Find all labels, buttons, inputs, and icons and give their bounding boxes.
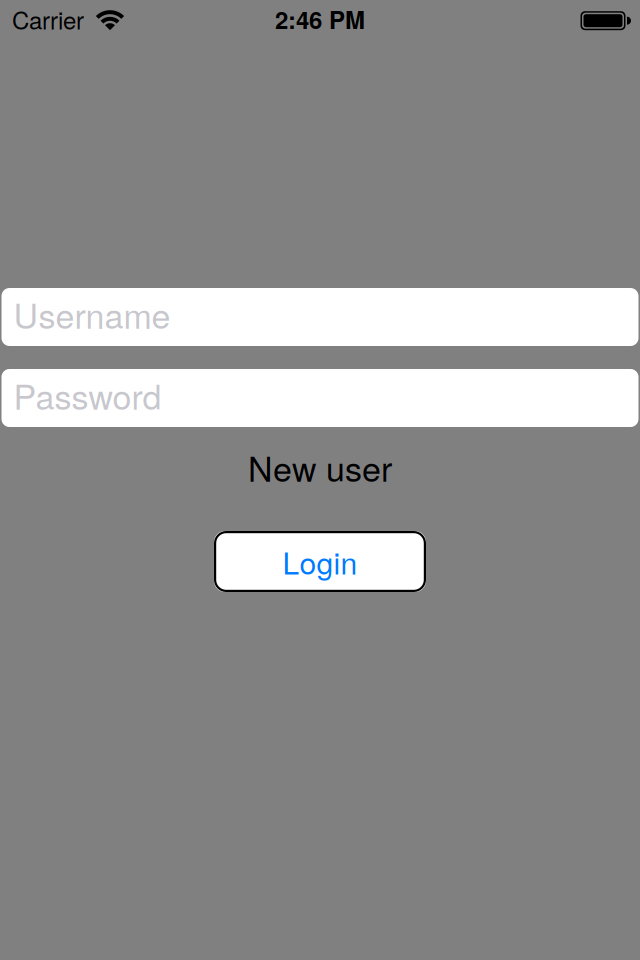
- button[interactable]: Login: [214, 531, 426, 592]
- staticText: Login: [282, 540, 357, 583]
- staticText: Carrier: [12, 2, 84, 36]
- button[interactable]: Password: [1, 369, 638, 427]
- staticText: Password: [13, 371, 161, 419]
- staticText: New user: [248, 443, 392, 491]
- button[interactable]: Username: [1, 288, 638, 346]
- staticText: Username: [13, 290, 170, 338]
- button[interactable]: New user: [248, 443, 392, 491]
- staticText: 2:46 PM: [275, 2, 365, 36]
